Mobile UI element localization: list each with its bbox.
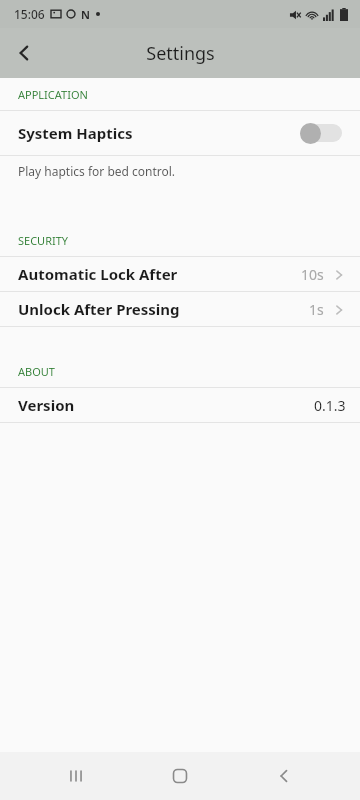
staticText: SECURITY xyxy=(18,233,69,248)
staticText: Settings xyxy=(146,41,215,66)
button[interactable]: System Haptics xyxy=(0,111,360,155)
button[interactable]: Home xyxy=(152,752,208,800)
staticText: APPLICATION xyxy=(18,87,88,102)
button[interactable]: Back xyxy=(0,29,48,77)
staticText: 1s xyxy=(309,300,324,319)
button[interactable]: Version xyxy=(0,388,360,422)
staticText: 10s xyxy=(301,265,324,284)
staticText: Automatic Lock After xyxy=(18,264,178,284)
button[interactable]: Unlock After Pressing xyxy=(0,292,360,326)
staticText: 0.1.3 xyxy=(314,396,346,415)
staticText: Play haptics for bed control. xyxy=(18,163,176,179)
staticText: System Haptics xyxy=(18,123,133,143)
staticText: ABOUT xyxy=(18,364,55,379)
button[interactable]: Back xyxy=(256,752,312,800)
button[interactable]: Automatic Lock After xyxy=(0,257,360,291)
staticText: Unlock After Pressing xyxy=(18,299,180,319)
staticText: 15:06 xyxy=(14,6,45,22)
staticText: N xyxy=(81,7,90,22)
staticText: Version xyxy=(18,395,75,415)
button[interactable]: Recents xyxy=(48,752,104,800)
